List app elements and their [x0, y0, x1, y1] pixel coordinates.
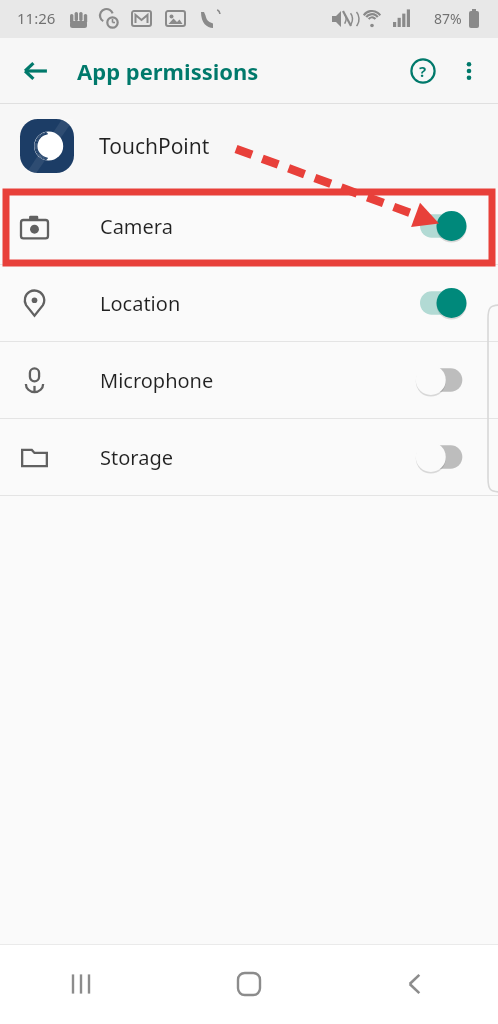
button[interactable]: Toggle on [420, 288, 466, 318]
button[interactable]: Back [386, 955, 444, 1013]
button[interactable]: More options [446, 48, 492, 94]
staticText: App permissions [77, 56, 259, 86]
button[interactable]: TouchPoint [0, 104, 498, 188]
button[interactable]: Microphone [0, 342, 498, 418]
button[interactable]: Home [220, 955, 278, 1013]
button[interactable]: Storage [0, 419, 498, 495]
button[interactable]: Camera [0, 188, 498, 264]
button[interactable]: Help [400, 48, 446, 94]
staticText: Microphone [100, 367, 214, 394]
button[interactable]: Location [0, 265, 498, 341]
staticText: Storage [100, 444, 173, 471]
staticText: TouchPoint [99, 132, 210, 161]
button[interactable]: Toggle on [420, 211, 466, 241]
button[interactable]: Recents [54, 955, 112, 1013]
button[interactable]: Back [14, 49, 58, 93]
staticText: ? [419, 61, 427, 81]
button[interactable]: Toggle off [420, 365, 466, 395]
staticText: Camera [100, 213, 173, 240]
staticText: Location [100, 290, 181, 317]
staticText: 87% [434, 9, 462, 28]
staticText: 11:26 [17, 8, 56, 28]
button[interactable]: Toggle off [420, 442, 466, 472]
